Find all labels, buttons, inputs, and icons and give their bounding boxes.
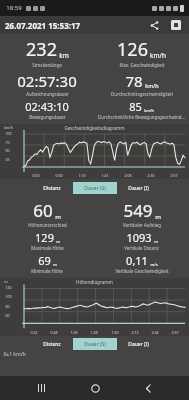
staticText: m [56, 239, 60, 244]
button[interactable]: Dauer (S) [74, 338, 116, 350]
button[interactable]: Map [169, 18, 183, 32]
button[interactable]: Share [147, 18, 161, 32]
staticText: 0±1 km/h [3, 351, 26, 358]
staticText: 0:00 [55, 173, 63, 178]
staticText: Vertikale Distanz [124, 245, 159, 251]
staticText: km/h [145, 82, 159, 89]
staticText: 25 [5, 157, 10, 162]
staticText: Dauer (S) [84, 341, 106, 348]
staticText: 69 [38, 253, 51, 268]
staticText: Höhendiagramm [76, 279, 113, 285]
staticText: 78 [125, 71, 143, 91]
staticText: Dauer (I) [128, 341, 149, 348]
staticText: 1:28 [90, 330, 98, 335]
staticText: 0:00 [32, 173, 40, 178]
staticText: km/h [150, 51, 166, 60]
staticText: 100 [5, 294, 12, 299]
button[interactable]: Distanz [30, 182, 73, 194]
staticText: 126 [117, 37, 148, 62]
button[interactable]: Back [136, 376, 160, 400]
staticText: m [55, 212, 61, 220]
staticText: 2:12 [131, 330, 139, 335]
staticText: 2:57 [170, 173, 178, 178]
staticText: Streckenlänge [32, 62, 62, 68]
staticText: 2:34 [151, 330, 159, 335]
staticText: Dauer (I) [128, 185, 149, 192]
button[interactable]: Distanz [30, 338, 73, 350]
staticText: 80 [5, 304, 10, 309]
staticText: m [4, 279, 8, 284]
staticText: 0,11 [126, 253, 148, 268]
staticText: Durchschnittsgeschwindigkeit [111, 91, 173, 97]
staticText: m [154, 239, 158, 244]
staticText: 02:57:30 [17, 71, 77, 91]
staticText: 60 [5, 313, 10, 318]
staticText: 129 [35, 230, 54, 245]
staticText: Bewegungsdauer [29, 114, 66, 120]
staticText: Vertikale Geschwindigkeit [115, 268, 169, 274]
staticText: 232 [26, 37, 57, 62]
button[interactable]: Home [83, 376, 107, 400]
staticText: 0:44 [50, 330, 58, 335]
staticText: 50 [5, 148, 10, 153]
staticText: 2:35 [147, 173, 155, 178]
staticText: 1:06 [70, 330, 78, 335]
staticText: 26.07.2021 15:53:17 [5, 20, 81, 31]
staticText: Distanz [43, 185, 61, 192]
staticText: 549 [123, 199, 153, 222]
staticText: 1:41 [101, 173, 109, 178]
staticText: km/h [4, 125, 13, 130]
staticText: Max. Geschwindigkeit [119, 62, 165, 68]
staticText: 85 [129, 99, 142, 114]
button[interactable]: Dauer (I) [117, 338, 159, 350]
staticText: Dauer (S) [84, 185, 106, 192]
staticText: m [155, 212, 161, 220]
staticText: Durchschnittliche Bewegungsgeschwind... [98, 114, 185, 120]
staticText: Minimale Höhe [31, 268, 63, 274]
staticText: 18:59 [6, 4, 22, 12]
staticText: Distanz [43, 341, 61, 348]
staticText: Aufzeichnungsdauer [26, 91, 69, 97]
staticText: km [59, 51, 69, 60]
staticText: 60 [33, 199, 53, 222]
staticText: 2:57 [171, 330, 179, 335]
staticText: Höhenunterschied [28, 222, 67, 228]
button[interactable]: Dauer (S) [74, 182, 116, 194]
staticText: Vertikaler Aufstieg [123, 222, 161, 228]
staticText: m [53, 262, 57, 267]
button[interactable]: Recents [29, 376, 53, 400]
staticText: 1:10 [78, 173, 86, 178]
staticText: 75 [5, 140, 10, 145]
staticText: Maximale Höhe [31, 245, 64, 251]
staticText: 100 [5, 131, 12, 136]
staticText: Geschwindigkeitsdiagramm [64, 125, 125, 131]
staticText: km/h [144, 108, 154, 113]
staticText: m/s [150, 262, 158, 267]
staticText: 1:50 [111, 330, 119, 335]
button[interactable]: Dauer (I) [117, 182, 159, 194]
staticText: 2:05 [124, 173, 132, 178]
staticText: 02:43:10 [25, 99, 69, 114]
staticText: 120 [5, 285, 12, 290]
staticText: 0:22 [30, 330, 38, 335]
staticText: 1093 [126, 230, 152, 245]
